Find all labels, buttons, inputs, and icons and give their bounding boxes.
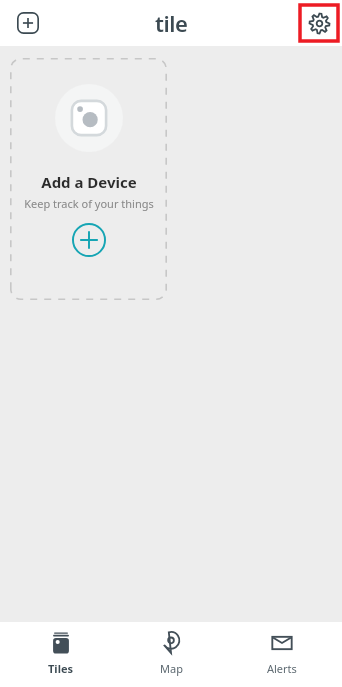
- button[interactable]: Add: [8, 3, 48, 43]
- button[interactable]: Add a Device: [10, 58, 167, 300]
- button[interactable]: Alerts: [232, 626, 332, 684]
- staticText: Alerts: [267, 661, 297, 676]
- button[interactable]: Add a device: [72, 223, 106, 257]
- button[interactable]: Settings: [300, 5, 338, 41]
- staticText: tile: [155, 8, 188, 38]
- button[interactable]: Map: [121, 626, 221, 684]
- button[interactable]: Tiles: [11, 626, 111, 684]
- staticText: Keep track of your things: [24, 196, 154, 211]
- staticText: Add a Device: [41, 172, 137, 192]
- staticText: Map: [160, 661, 183, 676]
- staticText: Tiles: [48, 661, 74, 676]
